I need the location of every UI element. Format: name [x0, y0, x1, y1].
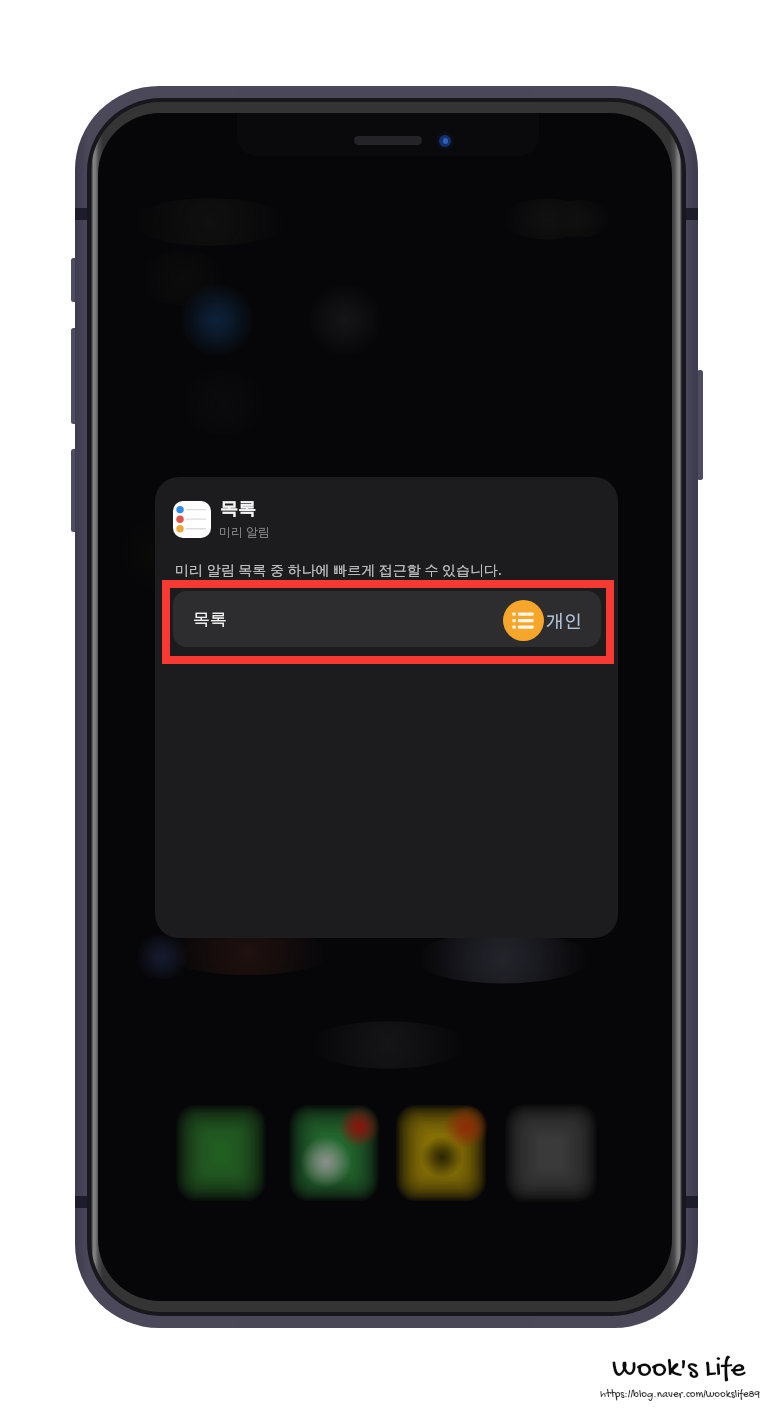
staticText: 미리 알림	[219, 523, 271, 539]
staticText: Wook's Life	[612, 1353, 746, 1387]
button[interactable]: 목록	[173, 591, 601, 647]
staticText: 미리 알림 목록 중 하나에 빠르게 접근할 수 있습니다.	[175, 560, 502, 579]
other: 목록 선택	[503, 600, 544, 641]
staticText: 개인	[546, 610, 582, 633]
staticText: 목록	[193, 609, 227, 630]
staticText: https://blog.naver.com/wookslife89	[600, 1389, 761, 1402]
staticText: 목록	[220, 498, 256, 521]
